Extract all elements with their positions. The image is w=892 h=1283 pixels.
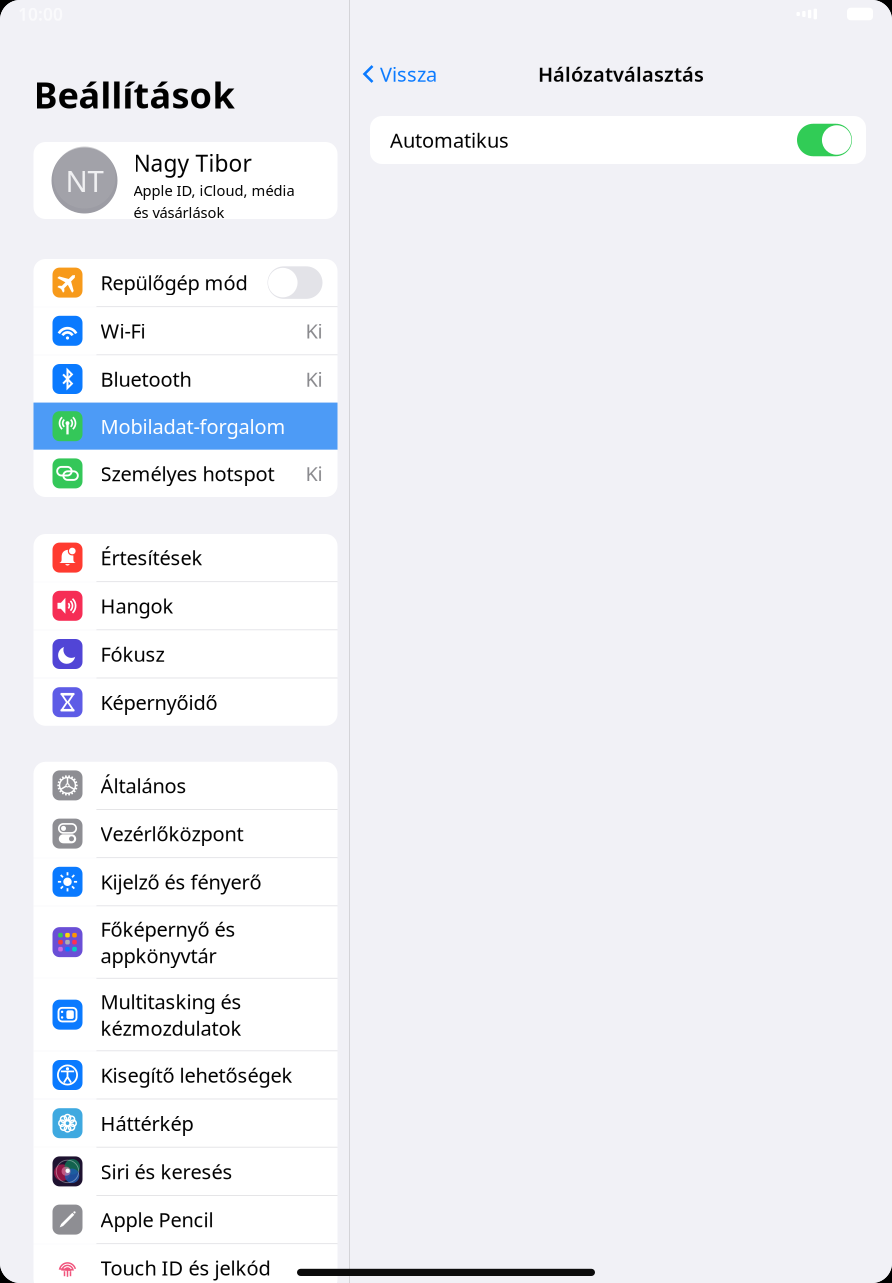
staticText: Apple ID, iCloud, média xyxy=(133,181,294,200)
button[interactable]: Vezérlőközpont xyxy=(33,810,337,857)
button[interactable]: Főképernyő és appkönyvtár xyxy=(33,906,337,978)
button[interactable]: Multitasking és kézmozdulatok xyxy=(33,979,337,1050)
button[interactable]: Személyes hotspot xyxy=(33,450,337,497)
staticText: Kisegítő lehetőségek xyxy=(100,1062,292,1088)
button[interactable]: NT xyxy=(33,142,337,219)
button[interactable]: Képernyőidő xyxy=(33,679,337,726)
staticText: 10:00 xyxy=(18,2,63,25)
staticText: Apple Pencil xyxy=(100,1206,213,1233)
staticText: Nagy Tibor xyxy=(133,148,251,178)
staticText: Multitasking és kézmozdulatok xyxy=(100,988,241,1041)
staticText: Vissza xyxy=(380,61,437,87)
staticText: Bluetooth xyxy=(100,366,191,392)
staticText: Háttérkép xyxy=(100,1110,193,1136)
staticText: és vásárlások xyxy=(133,203,224,222)
staticText: Hangok xyxy=(100,592,173,619)
staticText: Wi-Fi xyxy=(100,317,145,344)
button[interactable]: Kisegítő lehetőségek xyxy=(33,1051,337,1099)
button[interactable]: Hangok xyxy=(33,582,337,629)
staticText: Általános xyxy=(100,772,186,799)
staticText: Touch ID és jelkód xyxy=(100,1254,270,1281)
staticText: Főképernyő és appkönyvtár xyxy=(100,916,235,969)
staticText: Automatikus xyxy=(390,127,509,153)
staticText: Vezérlőközpont xyxy=(100,820,243,847)
button[interactable]: Repülőgép mód xyxy=(33,259,337,306)
button[interactable]: Siri és keresés xyxy=(33,1148,337,1195)
button[interactable]: Általános xyxy=(33,762,337,809)
button[interactable]: Fókusz xyxy=(33,630,337,678)
button[interactable]: Bluetooth xyxy=(33,355,337,403)
staticText: Értesítések xyxy=(100,544,202,571)
button[interactable]: Mobiladat-forgalom xyxy=(33,403,337,450)
button[interactable]: Értesítések xyxy=(33,534,337,581)
button[interactable]: Touch ID és jelkód xyxy=(33,1244,337,1283)
button[interactable]: Wi-Fi xyxy=(33,307,337,354)
staticText: Ki xyxy=(305,366,322,392)
staticText: Repülőgép mód xyxy=(100,269,247,296)
button[interactable]: Vissza xyxy=(350,52,437,96)
staticText: Beállítások xyxy=(33,71,234,118)
staticText: Ki xyxy=(305,317,322,344)
button[interactable]: Háttérkép xyxy=(33,1100,337,1147)
staticText: Kijelző és fényerő xyxy=(100,868,261,895)
button[interactable]: Apple Pencil xyxy=(33,1196,337,1243)
staticText: Képernyőidő xyxy=(100,689,217,715)
staticText: Mobiladat-forgalom xyxy=(100,413,285,439)
staticText: Hálózatválasztás xyxy=(538,61,704,87)
button[interactable]: Kijelző és fényerő xyxy=(33,858,337,905)
staticText: Siri és keresés xyxy=(100,1158,232,1185)
staticText: Fókusz xyxy=(100,641,164,667)
button[interactable]: Automatikus xyxy=(370,116,866,164)
staticText: Ki xyxy=(305,460,322,487)
staticText: NT xyxy=(65,161,103,200)
staticText: Személyes hotspot xyxy=(100,460,274,487)
